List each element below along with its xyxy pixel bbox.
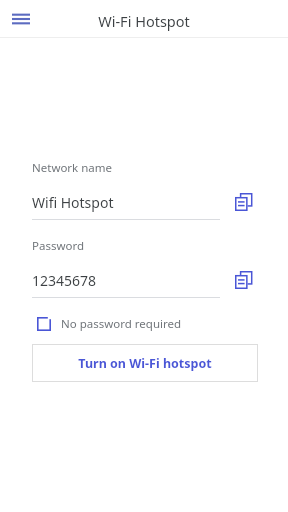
staticText: Turn on Wi-Fi hotspot — [78, 355, 212, 372]
staticText: No password required — [61, 316, 182, 332]
staticText: 12345678 — [32, 271, 97, 290]
staticText: Password — [32, 238, 85, 254]
button[interactable]: Turn on Wi-Fi hotspot — [32, 344, 258, 382]
button[interactable]: No password required — [33, 313, 182, 335]
button[interactable]: Copy password — [230, 266, 258, 294]
staticText: Wi-Fi Hotspot — [98, 11, 190, 31]
button[interactable]: Copy network name — [230, 188, 258, 216]
staticText: Wifi Hotspot — [32, 193, 114, 212]
button[interactable]: Open navigation menu — [4, 2, 38, 36]
staticText: Network name — [32, 160, 113, 176]
